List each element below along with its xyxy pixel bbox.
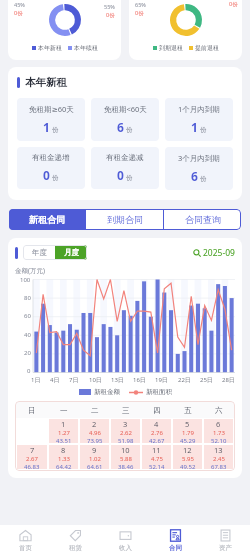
staticText: 80 <box>24 294 31 302</box>
staticText: 20 <box>24 349 31 357</box>
staticText: 64.42 <box>56 463 72 469</box>
button[interactable]: 合同 <box>150 525 200 555</box>
button[interactable]: 9 <box>80 445 109 469</box>
staticText: 60 <box>24 312 31 320</box>
staticText: 2.76 <box>151 429 163 437</box>
staticText: 新租合同 <box>29 214 65 225</box>
button[interactable]: 7 <box>17 445 47 469</box>
staticText: 46.83 <box>24 463 40 469</box>
staticText: 52.14 <box>149 463 165 469</box>
staticText: 65% <box>135 1 146 8</box>
staticText: 10日 <box>89 376 102 384</box>
staticText: 四 <box>153 406 161 415</box>
staticText: 5.95 <box>182 455 194 463</box>
staticText: 0份 <box>14 9 23 17</box>
staticText: 金额(万元) <box>15 266 45 275</box>
button[interactable]: 合同查询 <box>164 209 241 230</box>
staticText: 4日 <box>50 376 60 384</box>
staticText: 合同查询 <box>185 214 221 225</box>
staticText: 45.29 <box>180 437 196 443</box>
staticText: 3 <box>123 419 128 429</box>
staticText: 12 <box>183 445 192 455</box>
button[interactable]: 45% <box>8 0 121 60</box>
button[interactable]: 11 <box>142 445 171 469</box>
button[interactable]: 4 <box>142 419 171 443</box>
staticText: 1日 <box>31 376 41 384</box>
button[interactable]: 有租金递减 <box>91 147 159 189</box>
staticText: 3个月内到期 <box>178 153 220 163</box>
staticText: 份 <box>52 174 59 182</box>
button[interactable]: 8 <box>49 445 78 469</box>
staticText: 五 <box>184 406 192 415</box>
staticText: 到期合同 <box>107 214 143 225</box>
staticText: 2 <box>92 419 97 429</box>
staticText: 年度 <box>32 248 47 257</box>
other: 资产 <box>219 529 232 542</box>
staticText: 免租期<60天 <box>104 104 147 114</box>
button[interactable]: 免租期≥60天 <box>17 98 85 141</box>
staticText: 7 <box>30 445 35 455</box>
staticText: 19日 <box>155 376 168 384</box>
staticText: 0 <box>27 367 31 375</box>
button[interactable]: 6 <box>204 419 233 443</box>
button[interactable]: 65% <box>129 0 242 60</box>
staticText: 40 <box>24 331 31 339</box>
staticText: 有租金递增 <box>32 153 70 162</box>
staticText: 本年新租 <box>38 44 62 52</box>
button[interactable]: 年度 <box>23 245 55 260</box>
staticText: 42.67 <box>149 437 165 443</box>
staticText: 25日 <box>200 376 213 384</box>
staticText: 首页 <box>19 544 32 552</box>
staticText: 51.98 <box>118 437 134 443</box>
button[interactable]: 有租金递增 <box>17 147 85 189</box>
staticText: 1.27 <box>58 429 70 437</box>
button[interactable]: 2 <box>80 419 109 443</box>
staticText: 收入 <box>119 544 132 552</box>
button[interactable]: 1 <box>49 419 78 443</box>
button[interactable]: 首页 <box>0 525 50 555</box>
button[interactable]: 到期合同 <box>86 209 163 230</box>
staticText: 1.79 <box>182 429 194 437</box>
staticText: 份 <box>200 175 207 183</box>
button[interactable]: 月度 <box>55 245 87 260</box>
staticText: 6 <box>117 119 124 135</box>
staticText: 1 <box>61 419 66 429</box>
staticText: 份 <box>126 126 133 134</box>
staticText: 月度 <box>64 248 79 257</box>
staticText: 11 <box>152 445 161 455</box>
staticText: 16日 <box>133 376 146 384</box>
button[interactable]: 13 <box>204 445 233 469</box>
staticText: 1 <box>191 119 198 135</box>
staticText: 份 <box>200 126 207 134</box>
button[interactable]: 资产 <box>200 525 250 555</box>
button[interactable]: 3 <box>111 419 140 443</box>
other: 首页 <box>19 529 32 542</box>
button[interactable]: 收入 <box>100 525 150 555</box>
staticText: 合同 <box>169 544 182 552</box>
button[interactable]: 12 <box>173 445 202 469</box>
staticText: 1个月内到期 <box>178 104 220 114</box>
staticText: 64.61 <box>87 463 103 469</box>
staticText: 67.83 <box>211 463 227 469</box>
staticText: 本年新租 <box>25 76 67 89</box>
staticText: 55% <box>104 3 115 10</box>
staticText: 日 <box>28 406 36 415</box>
staticText: 5 <box>185 419 190 429</box>
other: 收入 <box>119 529 132 542</box>
button[interactable]: 新租合同 <box>9 209 85 230</box>
staticText: 份 <box>126 174 133 182</box>
staticText: 1.02 <box>89 455 101 463</box>
button[interactable]: 租赁 <box>50 525 100 555</box>
button[interactable]: 5 <box>173 419 202 443</box>
button[interactable]: 1个月内到期 <box>165 98 233 141</box>
button[interactable]: 10 <box>111 445 140 469</box>
button[interactable]: 3个月内到期 <box>165 147 233 190</box>
staticText: 本年续租 <box>74 44 98 52</box>
button[interactable]: 免租期<60天 <box>91 98 159 141</box>
staticText: 资产 <box>219 544 232 552</box>
staticText: 0 <box>43 167 50 183</box>
staticText: 5.88 <box>120 455 132 463</box>
staticText: 49.52 <box>180 463 196 469</box>
button[interactable]: Select month 2025-09 <box>193 247 235 259</box>
staticText: 52.10 <box>211 437 227 443</box>
